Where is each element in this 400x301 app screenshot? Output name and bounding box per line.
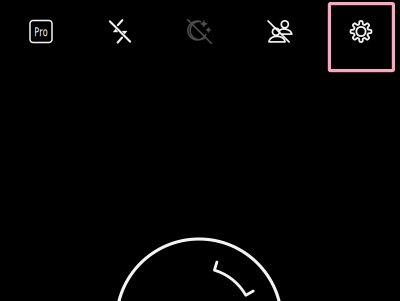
- staticText: Pro: [29, 22, 53, 41]
- button[interactable]: Settings: [0, 0, 400, 301]
- button[interactable]: Pro mode: [19, 9, 63, 53]
- button[interactable]: Night mode off: [0, 0, 400, 301]
- button[interactable]: Flash off: [0, 0, 400, 301]
- button[interactable]: Portrait off: [0, 0, 400, 301]
